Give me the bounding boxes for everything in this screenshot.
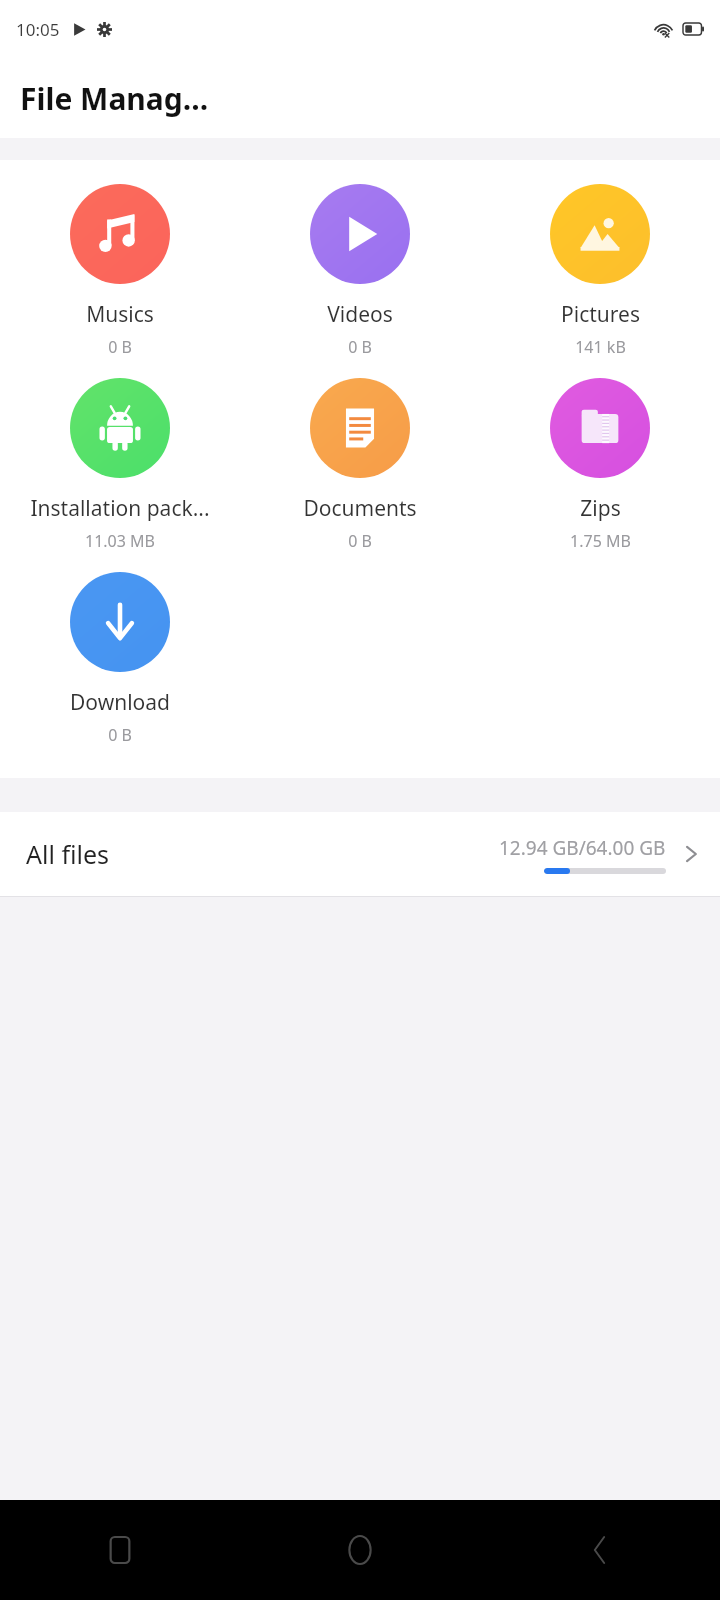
staticText: Zips: [580, 494, 621, 523]
staticText: All files: [26, 837, 109, 871]
button[interactable]: Installation pack...: [0, 368, 240, 562]
button[interactable]: Videos: [240, 174, 480, 368]
staticText: 12.94 GB/64.00 GB: [499, 835, 666, 861]
button[interactable]: Pictures: [480, 174, 720, 368]
button[interactable]: Back: [480, 1500, 720, 1600]
button[interactable]: Zips: [480, 368, 720, 562]
staticText: Musics: [86, 300, 154, 329]
staticText: 0 B: [108, 336, 132, 358]
staticText: 0 B: [108, 724, 132, 746]
staticText: Download: [70, 688, 170, 717]
button[interactable]: Home: [240, 1500, 480, 1600]
staticText: 1.75 MB: [570, 530, 631, 552]
button[interactable]: Musics: [0, 174, 240, 368]
staticText: 0 B: [348, 530, 372, 552]
staticText: File Manag...: [20, 78, 209, 119]
button[interactable]: Download: [0, 562, 240, 756]
staticText: 10:05: [16, 18, 60, 41]
staticText: Installation pack...: [30, 494, 210, 523]
staticText: Pictures: [561, 300, 640, 329]
staticText: Videos: [327, 300, 393, 329]
button[interactable]: Documents: [240, 368, 480, 562]
staticText: Documents: [303, 494, 417, 523]
button[interactable]: All files: [0, 812, 720, 896]
button[interactable]: Recents: [0, 1500, 240, 1600]
staticText: 0 B: [348, 336, 372, 358]
staticText: 141 kB: [575, 336, 626, 358]
other: Open all files: [680, 843, 702, 865]
staticText: 11.03 MB: [85, 530, 155, 552]
